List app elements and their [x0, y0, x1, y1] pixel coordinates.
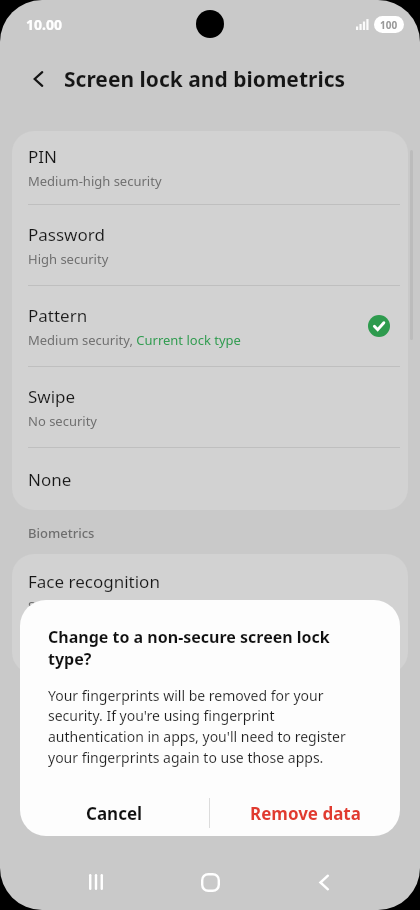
- staticText: Screen lock and biometrics: [64, 65, 346, 94]
- staticText: Cancel: [86, 802, 143, 825]
- staticText: Medium security, Current lock type: [28, 331, 241, 349]
- staticText: High security: [28, 250, 109, 268]
- button[interactable]: PIN: [12, 131, 408, 204]
- staticText: Change to a non-secure screen lock type?: [48, 626, 372, 670]
- staticText: Swipe: [28, 385, 76, 408]
- staticText: Remove data: [250, 802, 361, 825]
- staticText: Password: [28, 223, 105, 246]
- button[interactable]: Recents: [72, 858, 120, 906]
- staticText: Your fingerprints will be removed for yo…: [48, 686, 372, 768]
- staticText: Medium-high security: [28, 172, 162, 190]
- button[interactable]: Back: [300, 858, 348, 906]
- button[interactable]: Cancel: [20, 790, 209, 836]
- staticText: 100: [380, 18, 398, 32]
- button[interactable]: Remove data: [210, 790, 400, 836]
- button[interactable]: Pattern: [12, 286, 408, 366]
- staticText: Pattern: [28, 304, 88, 327]
- button[interactable]: Password: [12, 205, 408, 285]
- button[interactable]: None: [12, 448, 408, 510]
- button[interactable]: Swipe: [12, 367, 408, 447]
- button[interactable]: Back: [18, 58, 60, 100]
- staticText: Biometrics: [28, 524, 95, 542]
- staticText: Face recognition: [28, 570, 160, 593]
- staticText: PIN: [28, 145, 57, 168]
- staticText: 10.00: [26, 15, 62, 34]
- staticText: None: [28, 468, 72, 491]
- staticText: No security: [28, 412, 98, 430]
- button[interactable]: Home: [186, 858, 234, 906]
- staticText: Set up your face: [28, 597, 127, 615]
